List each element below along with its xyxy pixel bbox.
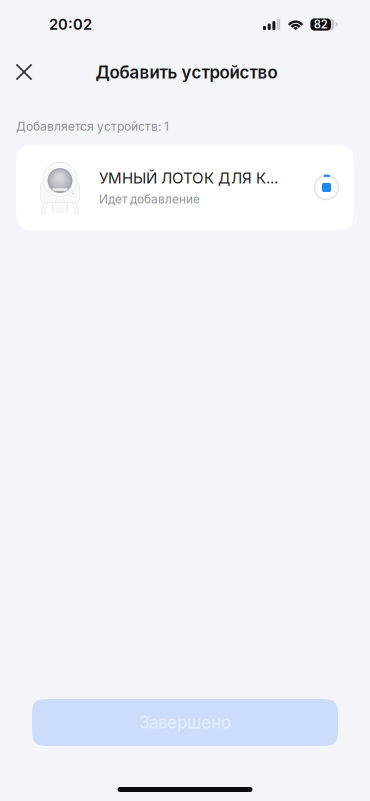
staticText: Добавить устройство [95, 62, 277, 83]
staticText: Идет добавление [99, 192, 200, 206]
staticText: 82 [314, 18, 328, 31]
button[interactable]: Остановить добавление [309, 170, 343, 204]
staticText: Добавляется устройств: 1 [16, 119, 169, 133]
button[interactable]: Закрыть [3, 51, 45, 93]
staticText: 20:02 [49, 16, 92, 33]
button[interactable]: Завершено [32, 699, 338, 746]
staticText: Завершено [139, 712, 231, 733]
staticText: УМНЫЙ ЛОТОК ДЛЯ К... [99, 169, 278, 187]
button[interactable]: УМНЫЙ ЛОТОК ДЛЯ К... [16, 144, 354, 230]
